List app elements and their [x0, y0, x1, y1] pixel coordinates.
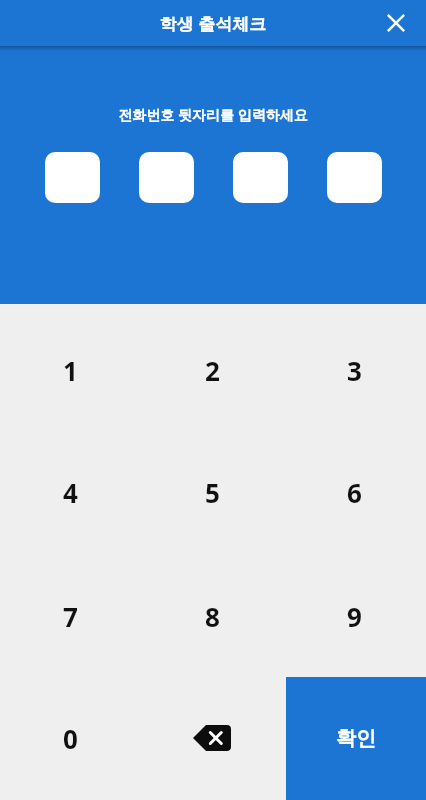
button[interactable]: 2: [165, 325, 259, 415]
button[interactable]: 0: [23, 693, 117, 783]
button[interactable]: 1: [23, 325, 117, 415]
button[interactable]: 9: [307, 571, 401, 661]
button[interactable]: Digit field 1: [45, 152, 100, 203]
button[interactable]: Digit field 2: [139, 152, 194, 203]
button[interactable]: Digit field 4: [327, 152, 382, 203]
button[interactable]: 3: [307, 325, 401, 415]
button[interactable]: 7: [23, 571, 117, 661]
staticText: 5: [205, 475, 220, 510]
button[interactable]: Digit field 3: [233, 152, 288, 203]
staticText: 7: [63, 599, 78, 634]
staticText: 학생 출석체크: [0, 12, 426, 35]
button[interactable]: 확인: [286, 677, 426, 800]
button[interactable]: Close: [374, 1, 418, 45]
staticText: 3: [347, 353, 362, 388]
staticText: 전화번호 뒷자리를 입력하세요: [0, 105, 426, 124]
staticText: 1: [63, 353, 78, 388]
button[interactable]: 8: [165, 571, 259, 661]
staticText: 0: [63, 721, 78, 756]
button[interactable]: 5: [165, 447, 259, 537]
staticText: 8: [205, 599, 220, 634]
button[interactable]: 4: [23, 447, 117, 537]
staticText: 확인: [336, 726, 376, 751]
staticText: 6: [347, 475, 362, 510]
button[interactable]: 6: [307, 447, 401, 537]
button[interactable]: Backspace: [165, 698, 259, 778]
staticText: 4: [63, 475, 78, 510]
staticText: 2: [205, 353, 220, 388]
staticText: 9: [347, 599, 362, 634]
